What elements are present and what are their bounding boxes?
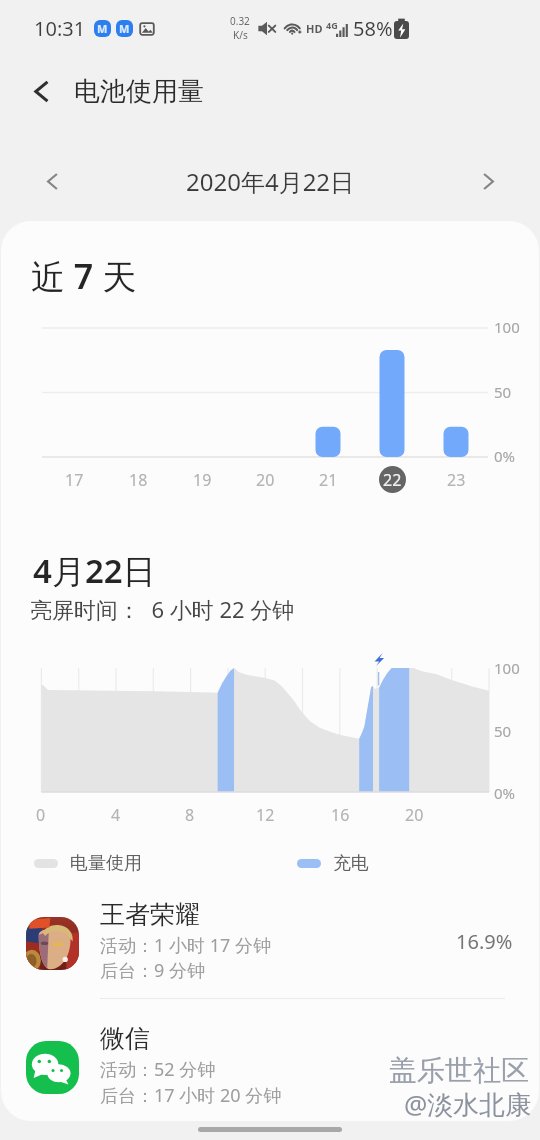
- staticText: HD: [306, 21, 323, 36]
- staticText: 4: [111, 804, 121, 826]
- button[interactable]: Back: [9, 59, 73, 123]
- staticText: 12: [256, 804, 275, 826]
- staticText: 4G: [326, 19, 338, 31]
- staticText: 16.9%: [456, 928, 513, 955]
- button[interactable]: Next day: [464, 157, 512, 205]
- staticText: M: [97, 21, 108, 36]
- staticText: 充电: [333, 852, 369, 875]
- staticText: 后台：9 分钟: [100, 958, 205, 983]
- staticText: 电池使用量: [74, 75, 204, 108]
- staticText: 19: [193, 469, 212, 491]
- staticText: 50: [494, 382, 512, 402]
- staticText: 2020年4月22日: [186, 165, 355, 198]
- staticText: 0.32: [230, 14, 250, 28]
- staticText: 后台：17 小时 20 分钟: [100, 1083, 282, 1108]
- staticText: M: [119, 21, 130, 36]
- staticText: @淡水北康: [404, 1086, 532, 1122]
- staticText: 100: [494, 658, 520, 678]
- staticText: 近 7 天: [31, 253, 137, 299]
- staticText: 王者荣耀: [100, 899, 200, 930]
- staticText: 电量使用: [70, 852, 142, 875]
- staticText: 0%: [494, 783, 516, 803]
- staticText: 10:31: [34, 15, 86, 42]
- staticText: 0: [36, 804, 46, 826]
- staticText: 50: [494, 721, 512, 741]
- staticText: 23: [447, 469, 466, 491]
- staticText: 活动：1 小时 17 分钟: [100, 933, 271, 958]
- staticText: 21: [319, 469, 338, 491]
- staticText: 22: [383, 469, 402, 491]
- staticText: 0%: [494, 446, 516, 466]
- staticText: 活动：52 分钟: [100, 1057, 216, 1082]
- staticText: 100: [494, 317, 520, 337]
- staticText: 20: [256, 469, 275, 491]
- button[interactable]: 微信: [0, 1012, 540, 1122]
- button[interactable]: 王者荣耀: [0, 888, 540, 998]
- staticText: 8: [185, 804, 195, 826]
- staticText: 18: [129, 469, 148, 491]
- staticText: 58%: [353, 15, 393, 42]
- button[interactable]: Previous day: [28, 157, 76, 205]
- staticText: 亮屏时间： 6 小时 22 分钟: [30, 594, 295, 624]
- staticText: 盖乐世社区: [389, 1053, 529, 1088]
- staticText: 17: [65, 469, 84, 491]
- staticText: 20: [405, 804, 424, 826]
- staticText: 16: [331, 804, 350, 826]
- staticText: 微信: [100, 1023, 150, 1054]
- staticText: 4月22日: [33, 548, 156, 593]
- staticText: K/s: [233, 28, 248, 42]
